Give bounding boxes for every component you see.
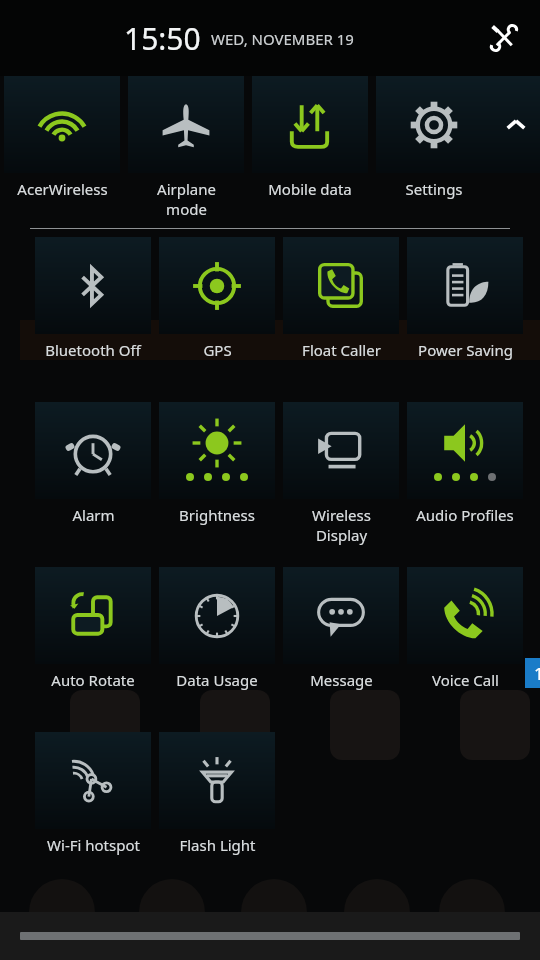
staticText: GPS (203, 340, 232, 360)
button[interactable]: Wireless Display (283, 402, 399, 499)
staticText: Airplane mode (157, 179, 216, 219)
staticText: Brightness (179, 505, 255, 525)
staticText: Alarm (72, 505, 115, 525)
button[interactable]: Airplane mode (128, 76, 244, 173)
button[interactable]: Flash Light (159, 732, 275, 829)
button[interactable]: Voice Call (407, 567, 523, 664)
button[interactable]: Mobile data (252, 76, 368, 173)
staticText: Voice Call (432, 670, 499, 690)
button[interactable]: Wi-Fi hotspot (35, 732, 151, 829)
button[interactable]: Power Saving (407, 237, 523, 334)
staticText: Message (310, 670, 373, 690)
button[interactable]: Alarm (35, 402, 151, 499)
staticText: Wireless Display (312, 505, 371, 545)
button[interactable]: Message (283, 567, 399, 664)
staticText: Wi-Fi hotspot (47, 835, 140, 855)
button[interactable]: Brightness (159, 402, 275, 499)
staticText: Bluetooth Off (45, 340, 141, 360)
staticText: Auto Rotate (51, 670, 135, 690)
staticText: Settings (405, 179, 463, 199)
button[interactable]: Float Caller (283, 237, 399, 334)
button[interactable]: Auto Rotate (35, 567, 151, 664)
button[interactable]: Collapse (492, 76, 540, 173)
staticText: Audio Profiles (416, 505, 514, 525)
staticText: Float Caller (302, 340, 381, 360)
button[interactable]: Settings (376, 76, 492, 173)
button[interactable]: AcerWireless (4, 76, 120, 173)
button[interactable]: Audio Profiles (407, 402, 523, 499)
staticText: Data Usage (176, 670, 258, 690)
button[interactable]: GPS (159, 237, 275, 334)
button[interactable]: Close panel (0, 912, 540, 960)
button[interactable]: Bluetooth Off (35, 237, 151, 334)
button[interactable]: Data Usage (159, 567, 275, 664)
staticText: Mobile data (268, 179, 352, 199)
staticText: Flash Light (179, 835, 256, 855)
staticText: Power Saving (418, 340, 513, 360)
staticText: AcerWireless (17, 179, 108, 199)
staticText: 15:50 (124, 18, 201, 59)
staticText: 1 (534, 662, 540, 685)
button[interactable]: Settings shortcut (482, 16, 526, 60)
staticText: WED, NOVEMBER 19 (211, 29, 354, 49)
